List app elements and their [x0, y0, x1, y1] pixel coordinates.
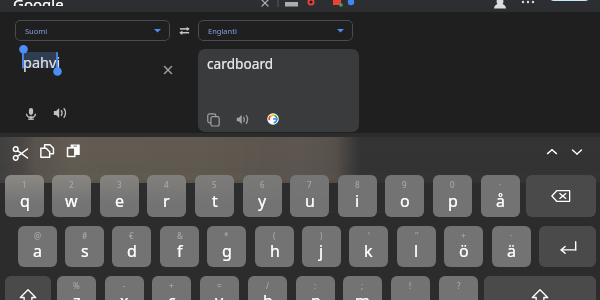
- button[interactable]: !: [391, 276, 430, 300]
- staticText: t: [212, 190, 218, 212]
- staticText: Suomi: [25, 26, 48, 36]
- button[interactable]: 8: [338, 175, 377, 217]
- staticText: 0: [450, 179, 455, 190]
- button[interactable]: ?: [439, 276, 478, 300]
- staticText: -: [123, 280, 126, 291]
- button[interactable]: -: [105, 276, 144, 300]
- button[interactable]: ": [397, 226, 436, 267]
- button[interactable]: #: [65, 226, 104, 267]
- staticText: #: [82, 230, 88, 241]
- button[interactable]: Speak: [24, 106, 38, 120]
- button[interactable]: cardboard: [198, 49, 359, 132]
- button[interactable]: (: [255, 226, 294, 267]
- staticText: b: [263, 290, 273, 300]
- button[interactable]: Enter: [539, 226, 596, 267]
- button[interactable]: Shift: [5, 276, 51, 300]
- button[interactable]: Swap languages: [174, 20, 195, 41]
- button[interactable]: +: [152, 276, 191, 300]
- button[interactable]: Copy: [40, 144, 54, 158]
- button[interactable]: 4: [147, 175, 186, 217]
- button[interactable]: Englanti: [198, 20, 353, 41]
- staticText: y: [258, 190, 267, 212]
- staticText: 8: [355, 179, 360, 190]
- button[interactable]: =: [200, 276, 239, 300]
- button[interactable]: 5: [195, 175, 234, 217]
- staticText: ä: [507, 240, 516, 262]
- staticText: 7: [307, 179, 312, 190]
- staticText: f: [177, 240, 183, 262]
- staticText: v: [215, 290, 224, 300]
- staticText: x: [120, 290, 129, 300]
- staticText: n: [311, 290, 321, 300]
- button[interactable]: Listen to translation: [236, 113, 249, 126]
- button[interactable]: 0: [433, 175, 472, 217]
- button[interactable]: @: [18, 226, 57, 267]
- button[interactable]: *: [207, 226, 246, 267]
- button[interactable]: 6: [243, 175, 282, 217]
- staticText: s: [81, 240, 89, 262]
- staticText: w: [65, 190, 78, 212]
- button[interactable]: 2: [52, 175, 91, 217]
- staticText: q: [20, 190, 30, 212]
- button[interactable]: 7: [290, 175, 329, 217]
- button[interactable]: Previous suggestion: [544, 144, 560, 160]
- staticText: 2: [69, 179, 74, 190]
- staticText: 3: [117, 179, 122, 190]
- staticText: u: [305, 190, 315, 212]
- staticText: ": [415, 230, 419, 241]
- staticText: @: [34, 230, 42, 241]
- button[interactable]: Paste: [67, 144, 80, 157]
- button[interactable]: ;: [343, 276, 382, 300]
- button[interactable]: Listen: [53, 106, 67, 120]
- button[interactable]: Open in Google Translate: [267, 113, 279, 125]
- staticText: 6: [260, 179, 265, 190]
- button[interactable]: Backspace: [526, 175, 596, 217]
- button[interactable]: Clear text: [160, 62, 176, 78]
- button[interactable]: ): [302, 226, 341, 267]
- staticText: (: [273, 230, 276, 241]
- staticText: e: [115, 190, 125, 212]
- staticText: +: [169, 280, 174, 291]
- button[interactable]: 3: [100, 175, 139, 217]
- staticText: l: [414, 240, 419, 262]
- staticText: a: [33, 240, 42, 262]
- button[interactable]: Suomi: [15, 20, 170, 41]
- button[interactable]: +: [444, 226, 483, 267]
- staticText: ·: [499, 179, 502, 190]
- button[interactable]: ·: [481, 175, 520, 217]
- button[interactable]: :: [296, 276, 335, 300]
- button[interactable]: /: [248, 276, 287, 300]
- button[interactable]: Shift: [484, 276, 596, 300]
- staticText: 9: [402, 179, 407, 190]
- staticText: z: [73, 290, 81, 300]
- button[interactable]: Cut: [13, 146, 28, 161]
- button[interactable]: €: [112, 226, 151, 267]
- button[interactable]: Copy translation: [207, 113, 220, 126]
- button[interactable]: %: [57, 276, 96, 300]
- staticText: pahvi: [23, 52, 61, 72]
- staticText: *: [224, 230, 229, 241]
- button[interactable]: 9: [385, 175, 424, 217]
- button[interactable]: Account: [493, 0, 507, 5]
- button[interactable]: Next suggestion: [569, 144, 585, 160]
- button[interactable]: More options: [521, 0, 535, 5]
- staticText: %: [73, 280, 80, 291]
- staticText: j: [319, 240, 324, 262]
- staticText: ·: [510, 230, 513, 241]
- staticText: €: [129, 230, 134, 241]
- staticText: d: [127, 240, 137, 262]
- button[interactable]: ': [349, 226, 388, 267]
- staticText: :: [314, 280, 317, 291]
- staticText: ): [320, 230, 323, 241]
- button[interactable]: [548, 0, 591, 1]
- button[interactable]: &: [160, 226, 199, 267]
- staticText: 5: [212, 179, 217, 190]
- staticText: ;: [361, 280, 364, 291]
- staticText: =: [217, 280, 222, 291]
- button[interactable]: ·: [492, 226, 531, 267]
- button[interactable]: 1: [5, 175, 44, 217]
- staticText: 1: [22, 179, 27, 190]
- staticText: p: [448, 190, 458, 212]
